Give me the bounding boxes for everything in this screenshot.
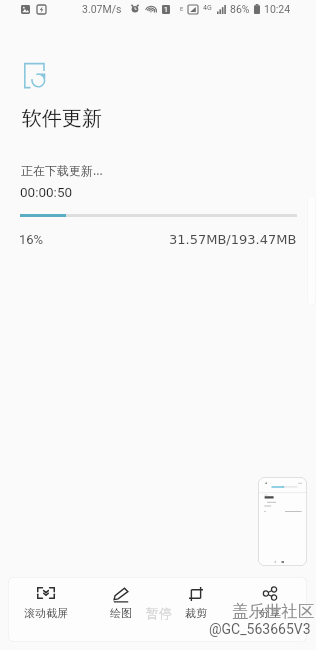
staticText: E (180, 5, 184, 12)
staticText: 正在下载更新... (21, 162, 103, 178)
staticText: 16% (19, 232, 44, 247)
staticText: 1 (164, 6, 168, 14)
staticText: 31.57MB/193.47MB (169, 232, 297, 247)
button[interactable]: 分享 (232, 577, 307, 642)
staticText: 盖乐世社区 (232, 601, 315, 622)
staticText: 分享 (259, 606, 281, 620)
button[interactable]: 滚动截屏 (8, 577, 83, 642)
button[interactable]: 裁剪 (158, 577, 233, 642)
staticText: 86% (230, 3, 250, 15)
staticText: 00:00:50 (20, 184, 73, 200)
staticText: 绘图 (110, 606, 132, 620)
button[interactable]: 绘图 (83, 577, 158, 642)
staticText: 10:24 (264, 3, 291, 15)
staticText: 3.07M/s (82, 3, 122, 15)
staticText: 4G (203, 4, 212, 12)
staticText: 暂停 (146, 605, 172, 621)
staticText: @GC_563665V3 (209, 621, 311, 637)
staticText: 滚动截屏 (24, 606, 68, 620)
staticText: 软件更新 (22, 106, 102, 131)
staticText: 裁剪 (185, 606, 207, 620)
